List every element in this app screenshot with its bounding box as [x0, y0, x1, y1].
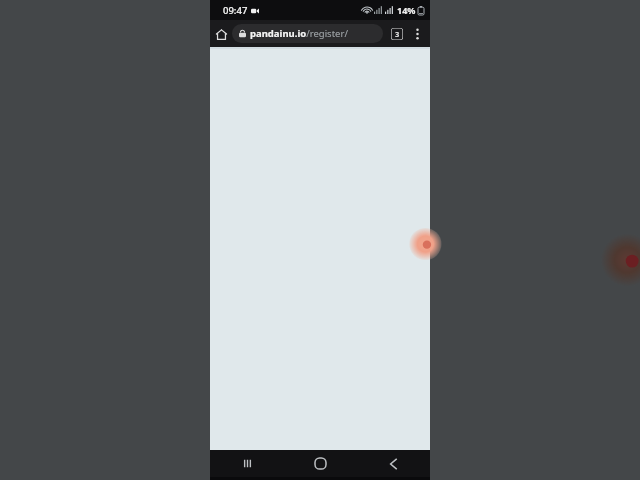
staticText: pandainu.io/register/Qx24e8 [250, 27, 376, 40]
staticText: 3 [395, 29, 400, 39]
staticText: 09:47 [223, 4, 248, 17]
button[interactable]: pandainu.io/register/Qx24e8 [232, 24, 383, 43]
button[interactable]: Tabs, 3 open [386, 23, 407, 44]
button[interactable]: More options [407, 23, 428, 44]
button[interactable]: Back [357, 450, 430, 477]
button[interactable]: Recent apps [210, 450, 284, 477]
button[interactable]: Home [210, 23, 232, 45]
button[interactable]: Home [284, 450, 357, 477]
staticText: 14% [397, 4, 416, 16]
